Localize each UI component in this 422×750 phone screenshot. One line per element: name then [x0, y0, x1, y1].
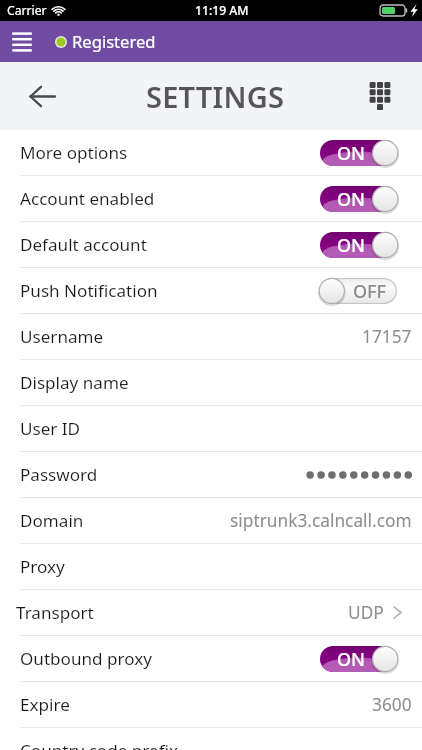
staticText: Proxy [20, 555, 65, 578]
staticText: Push Notification [20, 279, 158, 302]
staticText: Account enabled [20, 187, 155, 210]
staticText: Transport [16, 601, 94, 624]
staticText: ON [337, 233, 366, 258]
staticText: User ID [20, 417, 81, 440]
button[interactable]: Push Notification [0, 268, 422, 314]
button[interactable]: Proxy [0, 544, 422, 590]
staticText: Outbound proxy [20, 647, 153, 670]
staticText: siptrunk3.calncall.com [230, 509, 412, 533]
button[interactable]: Toggle on [320, 139, 399, 167]
staticText: Registered [72, 30, 156, 53]
staticText: Password [20, 463, 98, 486]
staticText: Username [20, 325, 104, 348]
staticText: OFF [353, 279, 387, 304]
button[interactable]: Toggle on [320, 645, 399, 673]
staticText: Display name [20, 371, 129, 394]
button[interactable]: Outbound proxy [0, 636, 422, 682]
button[interactable]: Account enabled [0, 176, 422, 222]
staticText: Domain [20, 509, 84, 532]
button[interactable]: Toggle on [320, 185, 399, 213]
button[interactable]: Username [0, 314, 422, 360]
button[interactable]: Transport [0, 590, 422, 636]
button[interactable]: Password [0, 452, 422, 498]
staticText: 17157 [362, 325, 412, 349]
button[interactable]: Expire [0, 682, 422, 728]
staticText: Carrier [7, 2, 47, 19]
button[interactable]: Domain [0, 498, 422, 544]
staticText: 11:19 AM [195, 2, 249, 19]
staticText: 3600 [372, 693, 412, 717]
staticText: More options [20, 141, 128, 164]
button[interactable]: Menu [0, 21, 43, 62]
staticText: UDP [348, 601, 384, 625]
button[interactable]: More options [0, 130, 422, 176]
button[interactable]: Toggle on [320, 231, 399, 259]
button[interactable]: Default account [0, 222, 422, 268]
staticText: ON [337, 647, 366, 672]
button[interactable]: Country code prefix [0, 728, 422, 750]
staticText: ON [337, 187, 366, 212]
button[interactable]: Dialpad [338, 62, 422, 130]
button[interactable]: Display name [0, 360, 422, 406]
button[interactable]: Back [0, 62, 84, 130]
staticText: SETTINGS [146, 77, 285, 116]
staticText: Default account [20, 233, 147, 256]
button[interactable]: Toggle off [320, 277, 399, 305]
staticText: Country code prefix [20, 739, 179, 750]
button[interactable]: User ID [0, 406, 422, 452]
staticText: ON [337, 141, 366, 166]
staticText: Expire [20, 693, 70, 716]
